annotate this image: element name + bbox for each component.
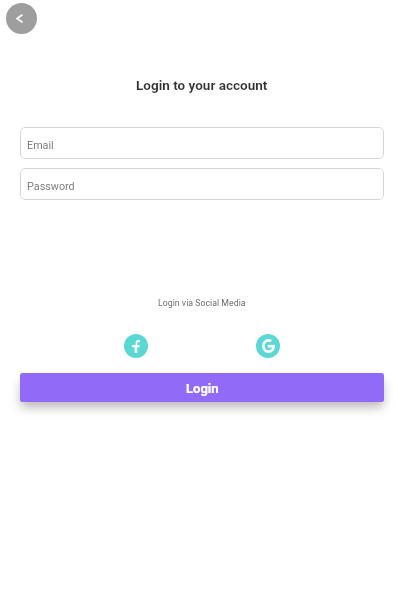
staticText: Login [186, 381, 219, 396]
button[interactable]: Login with Google [256, 334, 280, 358]
button[interactable]: Back [6, 3, 37, 34]
staticText: Login via Social Media [158, 298, 246, 308]
button[interactable]: Password [20, 168, 384, 200]
staticText: Login to your account [136, 77, 268, 93]
staticText: Email [27, 139, 54, 152]
button[interactable]: Email [20, 127, 384, 159]
button[interactable]: Login [20, 373, 384, 402]
button[interactable]: Login with Facebook [124, 334, 148, 358]
staticText: Password [27, 180, 75, 193]
